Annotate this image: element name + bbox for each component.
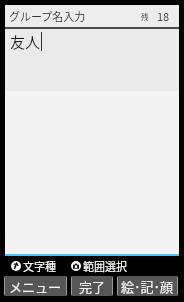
staticText: 絵･記･顔 [121, 277, 174, 296]
staticText: 完了 [79, 277, 106, 296]
button[interactable]: メニュー [4, 276, 67, 296]
button[interactable]: 絵･記･顔 [117, 276, 178, 296]
button[interactable]: Select range [71, 258, 127, 274]
staticText: メニュー [9, 277, 62, 296]
staticText: 文字種 [23, 258, 56, 274]
staticText: 残 [141, 11, 149, 22]
staticText: グループ名入力 [9, 8, 86, 24]
staticText: 18 [157, 8, 170, 24]
other: Select range [71, 261, 81, 271]
button[interactable]: 完了 [71, 276, 113, 296]
other: Character type [11, 261, 21, 271]
staticText: 範囲選択 [83, 258, 127, 274]
staticText: 友人 [10, 31, 41, 53]
button[interactable]: Character type [11, 258, 56, 274]
